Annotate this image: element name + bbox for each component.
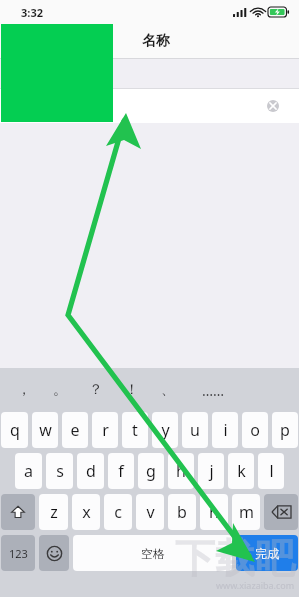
button[interactable]: o	[242, 412, 268, 448]
staticText: 、	[161, 381, 175, 399]
staticText: 3:32	[21, 5, 43, 20]
staticText: 空格	[141, 546, 165, 561]
staticText: y	[161, 419, 170, 441]
button[interactable]: ，	[6, 368, 42, 412]
button[interactable]: Emoji	[39, 535, 69, 571]
button[interactable]: 。	[42, 368, 78, 412]
button[interactable]: 123	[1, 535, 35, 571]
staticText: ！	[125, 381, 139, 399]
staticText: ？	[89, 381, 103, 399]
staticText: d	[86, 460, 96, 482]
staticText: h	[176, 460, 186, 482]
button[interactable]: y	[152, 412, 178, 448]
button[interactable]: m	[232, 494, 260, 530]
button[interactable]: t	[122, 412, 148, 448]
staticText: 123	[9, 546, 28, 561]
staticText: t	[132, 419, 138, 441]
button[interactable]: w	[32, 412, 58, 448]
staticText: 名称	[142, 32, 170, 50]
staticText: b	[177, 501, 187, 523]
button[interactable]: j	[198, 453, 224, 489]
button[interactable]: Clear text	[0, 89, 299, 123]
staticText: ……	[202, 381, 225, 400]
button[interactable]: p	[272, 412, 298, 448]
button[interactable]: 、	[150, 368, 186, 412]
staticText: w	[39, 419, 52, 441]
staticText: r	[102, 419, 109, 441]
button[interactable]: 完成	[236, 535, 298, 571]
button[interactable]: s	[46, 453, 73, 489]
button[interactable]: q	[1, 412, 28, 448]
button[interactable]: i	[212, 412, 238, 448]
staticText: o	[250, 419, 260, 441]
staticText: z	[50, 501, 58, 523]
staticText: i	[223, 419, 228, 441]
button[interactable]: r	[92, 412, 118, 448]
button[interactable]: Backspace	[264, 494, 298, 530]
staticText: ，	[17, 381, 31, 399]
button[interactable]: z	[39, 494, 68, 530]
button[interactable]: 空格	[73, 535, 232, 571]
staticText: www.xiazaiba.com	[216, 579, 295, 591]
button[interactable]: e	[62, 412, 88, 448]
button[interactable]: c	[104, 494, 132, 530]
button[interactable]: h	[168, 453, 194, 489]
button[interactable]: f	[108, 453, 134, 489]
button[interactable]: Shift	[1, 494, 35, 530]
staticText: x	[82, 501, 91, 523]
button[interactable]: n	[200, 494, 228, 530]
staticText: g	[146, 460, 156, 482]
staticText: q	[10, 419, 20, 441]
button[interactable]: ！	[114, 368, 150, 412]
staticText: p	[280, 419, 290, 441]
button[interactable]: ……	[186, 368, 240, 412]
button[interactable]: l	[258, 453, 284, 489]
button[interactable]: Clear text	[267, 100, 279, 112]
button[interactable]: k	[228, 453, 254, 489]
staticText: a	[24, 460, 33, 482]
staticText: s	[56, 460, 64, 482]
staticText: 。	[53, 381, 67, 399]
button[interactable]: b	[168, 494, 196, 530]
staticText: 下载吧	[175, 533, 295, 583]
staticText: j	[209, 460, 214, 482]
staticText: l	[269, 460, 274, 482]
staticText: c	[114, 501, 122, 523]
button[interactable]: ？	[78, 368, 114, 412]
button[interactable]: a	[15, 453, 42, 489]
staticText: k	[237, 460, 246, 482]
staticText: m	[239, 501, 254, 523]
staticText: u	[190, 419, 200, 441]
button[interactable]: u	[182, 412, 208, 448]
staticText: f	[118, 460, 124, 482]
button[interactable]: d	[77, 453, 104, 489]
button[interactable]: v	[136, 494, 164, 530]
staticText: n	[209, 501, 219, 523]
button[interactable]: x	[72, 494, 100, 530]
staticText: v	[146, 501, 155, 523]
staticText: 完成	[255, 546, 279, 561]
staticText: e	[70, 419, 80, 441]
button[interactable]: g	[138, 453, 164, 489]
